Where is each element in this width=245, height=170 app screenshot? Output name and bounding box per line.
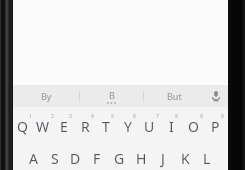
staticText: 9 bbox=[200, 113, 203, 120]
staticText: W bbox=[36, 117, 50, 136]
staticText: G bbox=[114, 149, 125, 168]
button[interactable]: S bbox=[44, 138, 65, 170]
button[interactable]: J bbox=[152, 138, 174, 170]
staticText: 3 bbox=[69, 113, 72, 120]
button[interactable]: K bbox=[174, 138, 196, 170]
button[interactable]: D bbox=[65, 138, 86, 170]
staticText: R bbox=[81, 117, 90, 136]
button[interactable]: By bbox=[13, 85, 79, 107]
button[interactable]: U bbox=[140, 107, 162, 138]
staticText: Y bbox=[124, 117, 132, 136]
button[interactable]: T bbox=[97, 107, 118, 138]
button[interactable]: W bbox=[34, 107, 55, 138]
staticText: P bbox=[211, 117, 220, 136]
button[interactable]: L bbox=[196, 138, 218, 170]
staticText: 6 bbox=[133, 113, 136, 120]
button[interactable]: P bbox=[206, 107, 228, 138]
staticText: A bbox=[29, 149, 38, 168]
staticText: B bbox=[109, 89, 115, 101]
button[interactable]: E bbox=[55, 107, 76, 138]
button[interactable]: G bbox=[108, 138, 130, 170]
staticText: S bbox=[51, 149, 59, 168]
button[interactable]: F bbox=[86, 138, 108, 170]
button[interactable]: O bbox=[184, 107, 206, 138]
staticText: Q bbox=[17, 117, 28, 136]
staticText: L bbox=[203, 149, 211, 168]
staticText: D bbox=[70, 149, 81, 168]
button[interactable]: H bbox=[130, 138, 152, 170]
button[interactable]: A bbox=[23, 138, 44, 170]
button[interactable]: Voice input bbox=[204, 85, 228, 107]
staticText: O bbox=[188, 117, 199, 136]
staticText: I bbox=[169, 117, 174, 136]
staticText: K bbox=[181, 149, 190, 168]
staticText: H bbox=[136, 149, 147, 168]
button[interactable]: Q bbox=[13, 107, 34, 138]
staticText: 4 bbox=[91, 113, 94, 120]
staticText: T bbox=[102, 117, 110, 136]
staticText: 8 bbox=[175, 113, 178, 120]
staticText: 2 bbox=[51, 113, 54, 120]
staticText: By bbox=[41, 90, 52, 102]
button[interactable]: But bbox=[144, 85, 204, 107]
staticText: F bbox=[93, 149, 101, 168]
button[interactable]: Y bbox=[118, 107, 140, 138]
staticText: U bbox=[144, 117, 155, 136]
staticText: E bbox=[60, 117, 68, 136]
staticText: 0 bbox=[221, 113, 224, 120]
button[interactable]: R bbox=[76, 107, 97, 138]
staticText: But bbox=[167, 90, 182, 102]
staticText: J bbox=[161, 149, 165, 168]
staticText: 1 bbox=[29, 113, 32, 120]
button[interactable]: B bbox=[80, 85, 143, 107]
staticText: 7 bbox=[156, 113, 159, 120]
staticText: 5 bbox=[111, 113, 114, 120]
button[interactable]: I bbox=[162, 107, 184, 138]
